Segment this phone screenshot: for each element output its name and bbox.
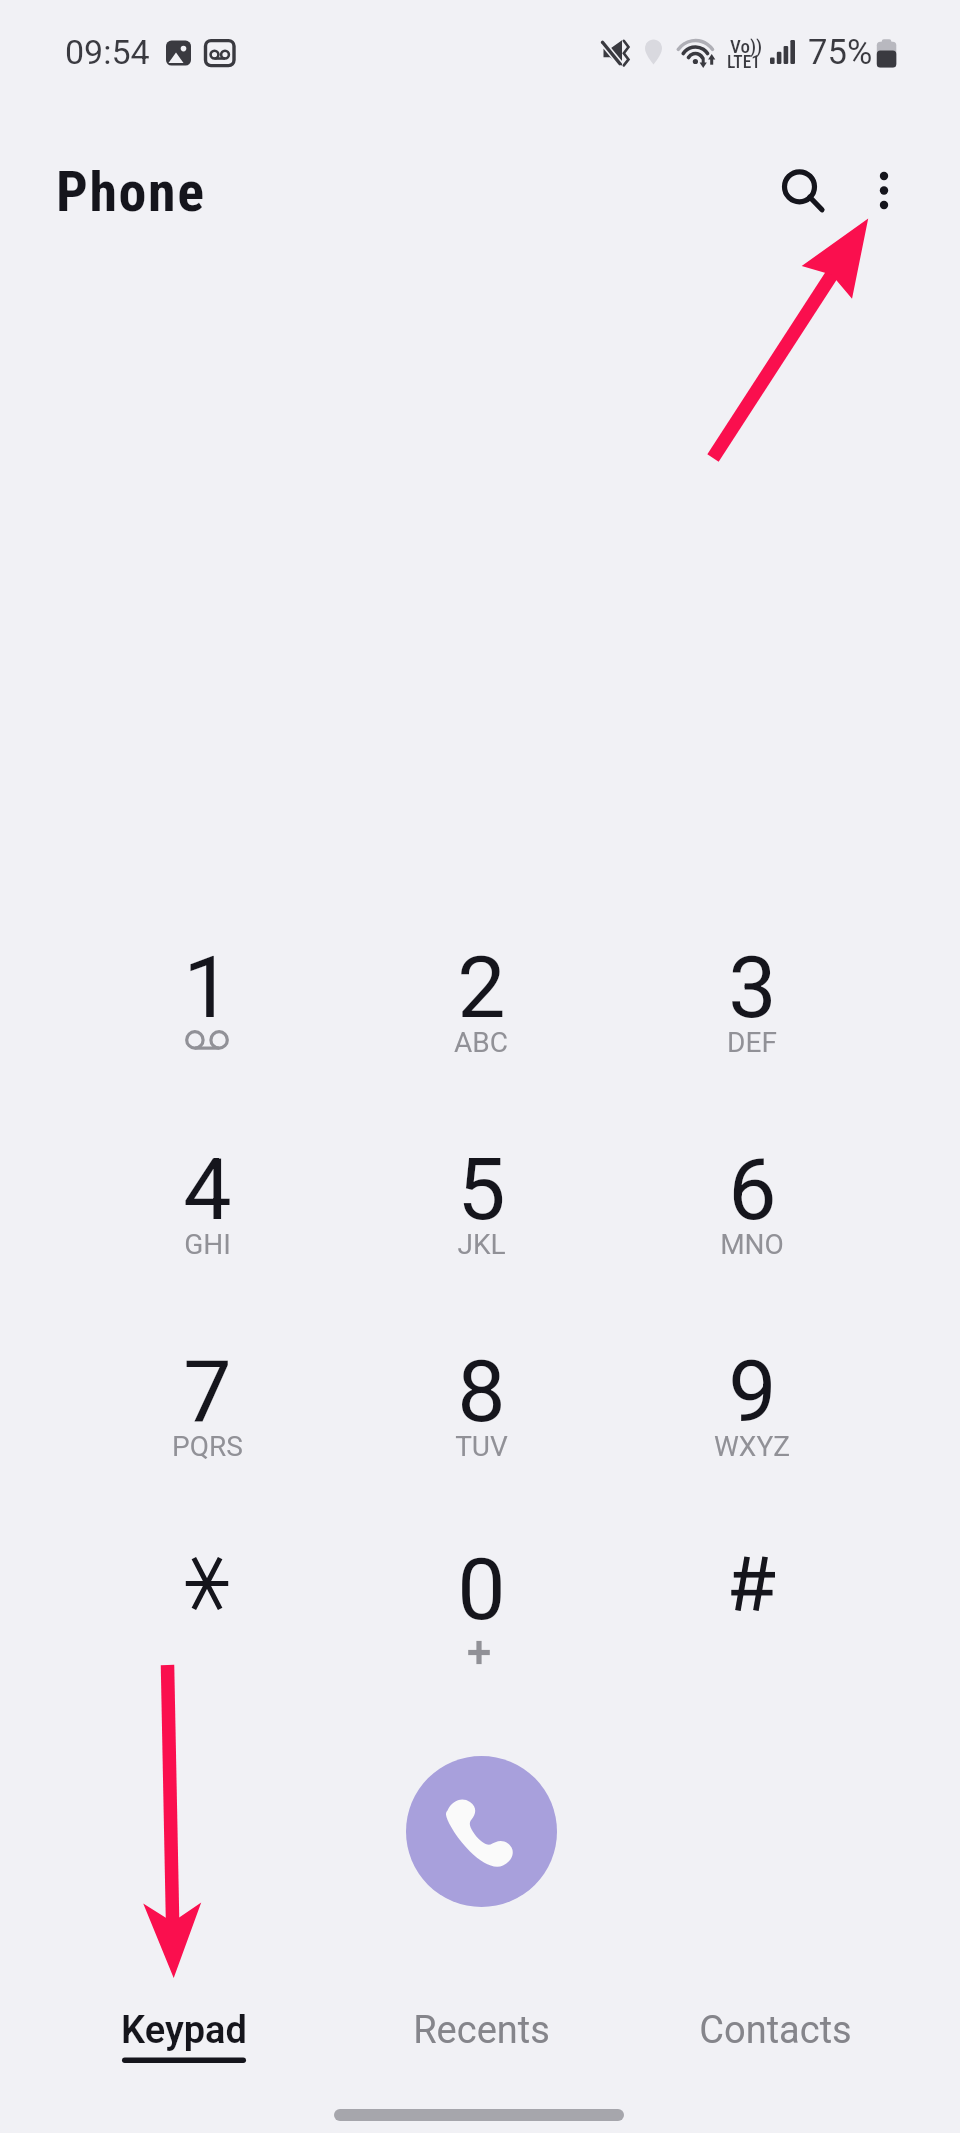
button[interactable] — [642, 911, 862, 1091]
button[interactable] — [371, 1513, 591, 1693]
staticText: 5 — [457, 1139, 506, 1240]
staticText: Contacts — [699, 2008, 852, 2053]
staticText: GHI — [184, 1228, 231, 1261]
button[interactable] — [371, 911, 591, 1091]
staticText: 75% — [808, 32, 873, 73]
staticText: Recents — [413, 2008, 550, 2053]
staticText: JKL — [457, 1228, 506, 1261]
staticText: MNO — [720, 1228, 784, 1261]
button[interactable]: Call — [406, 1756, 557, 1907]
staticText: LTE1 — [727, 52, 761, 73]
button[interactable] — [642, 1513, 862, 1693]
staticText: ABC — [454, 1026, 508, 1059]
button[interactable] — [371, 1113, 591, 1293]
staticText: 0 — [457, 1539, 506, 1640]
staticText: 9 — [728, 1341, 777, 1442]
staticText: 09:54 — [65, 32, 150, 72]
staticText: Keypad — [121, 2008, 247, 2053]
staticText: Phone — [56, 159, 206, 225]
button[interactable] — [97, 1513, 317, 1693]
button[interactable] — [642, 1113, 862, 1293]
staticText: PQRS — [172, 1430, 243, 1463]
button[interactable] — [625, 1990, 925, 2085]
staticText: 6 — [728, 1139, 777, 1240]
staticText: DEF — [727, 1026, 777, 1059]
staticText: Vo)) — [730, 35, 763, 57]
staticText: 8 — [457, 1341, 506, 1442]
staticText: 4 — [183, 1139, 232, 1240]
button[interactable] — [34, 1990, 334, 2085]
button[interactable] — [371, 1315, 591, 1495]
button[interactable]: Search — [747, 135, 851, 239]
staticText: 7 — [183, 1341, 232, 1442]
button[interactable] — [331, 1990, 631, 2085]
staticText: TUV — [455, 1430, 508, 1463]
staticText: 3 — [728, 937, 777, 1038]
button[interactable]: More options — [832, 138, 936, 242]
button[interactable] — [97, 911, 317, 1091]
button[interactable] — [642, 1315, 862, 1495]
staticText: WXYZ — [714, 1430, 790, 1463]
button[interactable] — [97, 1315, 317, 1495]
staticText: 2 — [457, 937, 506, 1038]
button[interactable] — [97, 1113, 317, 1293]
staticText: 1 — [183, 937, 232, 1038]
